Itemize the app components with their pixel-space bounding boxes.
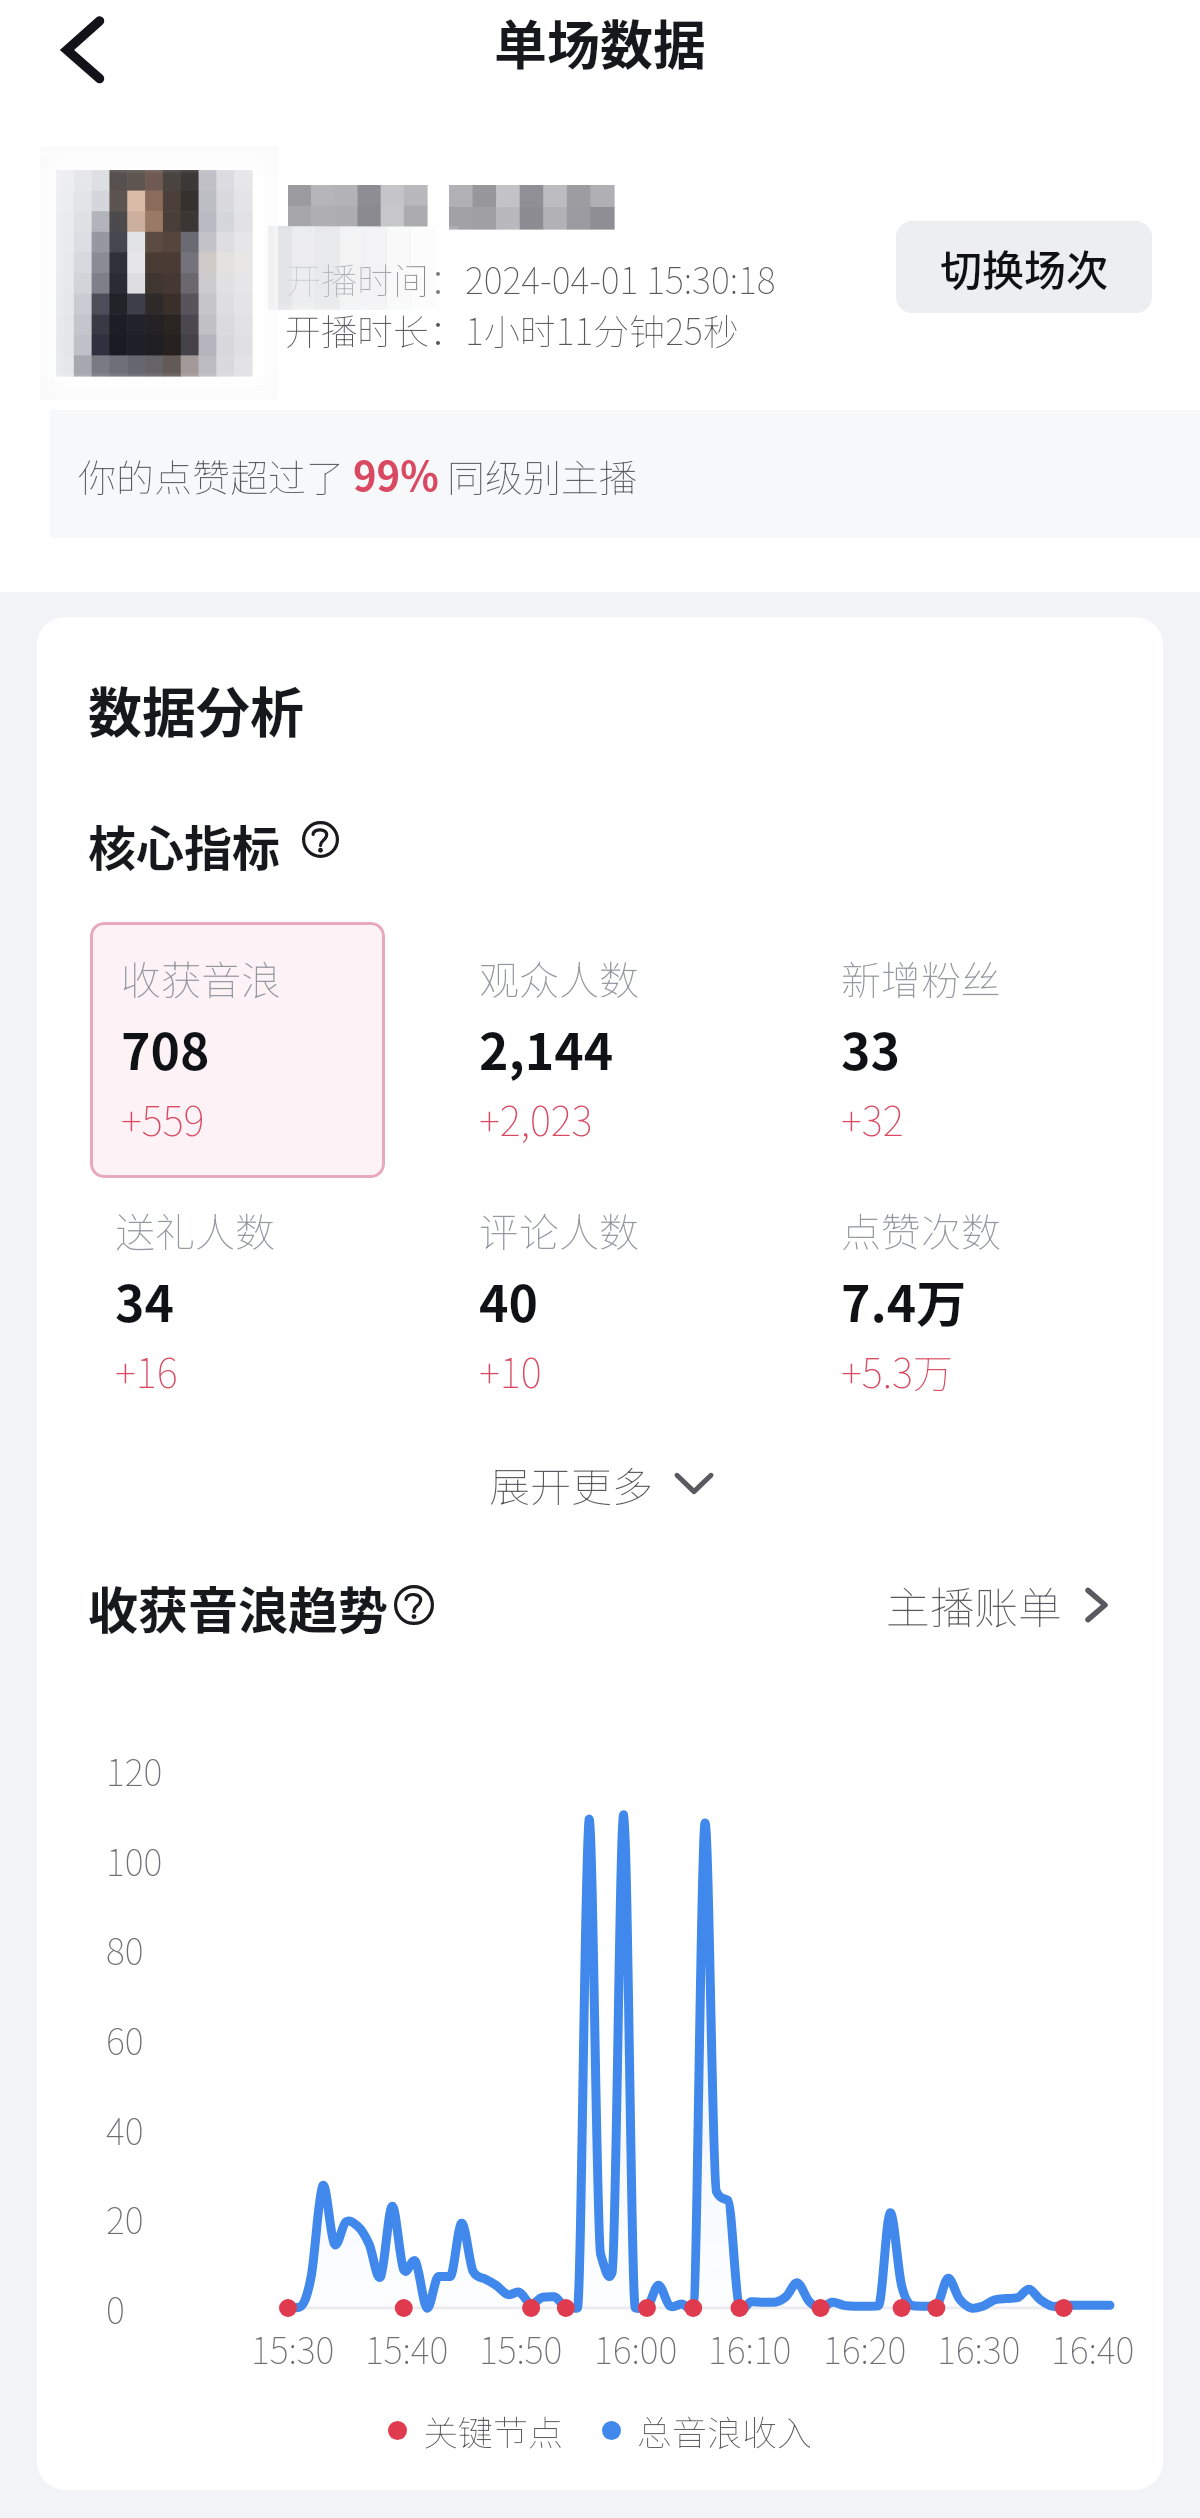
staticText: 16:30 <box>937 2322 1021 2374</box>
staticText: 点赞次数 <box>841 1201 1001 1259</box>
staticText: 33 <box>841 1012 900 1084</box>
staticText: 评论人数 <box>479 1201 639 1259</box>
button[interactable]: 送礼人数 <box>115 1201 445 1406</box>
staticText: 80 <box>106 1923 144 1975</box>
staticText: 708 <box>121 1012 210 1084</box>
staticText: 同级别主播 <box>447 448 638 503</box>
staticText: 开播时长：1小时11分钟25秒 <box>285 303 739 355</box>
staticText: 核心指标 <box>88 810 281 880</box>
staticText: +559 <box>121 1090 205 1148</box>
staticText: 0 <box>106 2282 125 2334</box>
staticText: 单场数据 <box>494 4 706 81</box>
staticText: +16 <box>115 1342 178 1400</box>
button[interactable]: 切换场次 <box>896 221 1152 313</box>
staticText: 16:40 <box>1051 2322 1135 2374</box>
button[interactable]: 新增粉丝 <box>841 949 1141 1154</box>
staticText: 99% <box>353 445 439 503</box>
button[interactable]: 观众人数 <box>479 949 809 1154</box>
staticText: 15:30 <box>251 2322 335 2374</box>
staticText: 展开更多 <box>489 1454 653 1513</box>
staticText: +2,023 <box>479 1090 593 1148</box>
staticText: 观众人数 <box>479 949 639 1007</box>
staticText: 15:40 <box>365 2322 449 2374</box>
staticText: 16:00 <box>594 2322 678 2374</box>
staticText: +32 <box>841 1090 904 1148</box>
staticText: 60 <box>106 2013 144 2065</box>
staticText: +5.3万 <box>841 1342 953 1400</box>
button[interactable]: 点赞次数 <box>841 1201 1141 1406</box>
staticText: 7.4万 <box>841 1264 967 1336</box>
staticText: 120 <box>106 1744 163 1796</box>
staticText: 总音浪收入 <box>637 2405 813 2456</box>
staticText: 你的点赞超过了 <box>78 448 345 503</box>
staticText: 送礼人数 <box>115 1201 275 1259</box>
button[interactable]: 展开更多 <box>489 1448 719 1518</box>
staticText: 16:10 <box>708 2322 792 2374</box>
button[interactable]: 收获音浪 <box>90 922 385 1178</box>
staticText: +10 <box>479 1342 542 1400</box>
staticText: 20 <box>106 2192 144 2244</box>
staticText: 16:20 <box>823 2322 907 2374</box>
staticText: 数据分析 <box>88 670 304 748</box>
staticText: 34 <box>115 1264 174 1336</box>
button[interactable]: Back <box>40 8 128 96</box>
button[interactable]: 主播账单 <box>886 1570 1126 1640</box>
staticText: 关键节点 <box>423 2405 564 2456</box>
staticText: 新增粉丝 <box>841 949 1001 1007</box>
staticText: 2,144 <box>479 1012 614 1084</box>
staticText: 切换场次 <box>940 237 1109 298</box>
staticText: 15:50 <box>479 2322 563 2374</box>
staticText: 40 <box>106 2103 144 2155</box>
staticText: 收获音浪趋势 <box>88 1571 388 1643</box>
staticText: 100 <box>106 1834 163 1886</box>
staticText: 主播账单 <box>886 1573 1062 1637</box>
button[interactable]: 评论人数 <box>479 1201 809 1406</box>
staticText: 40 <box>479 1264 538 1336</box>
staticText: 开播时间：2024-04-01 15:30:18 <box>285 252 776 304</box>
staticText: 收获音浪 <box>121 949 281 1007</box>
